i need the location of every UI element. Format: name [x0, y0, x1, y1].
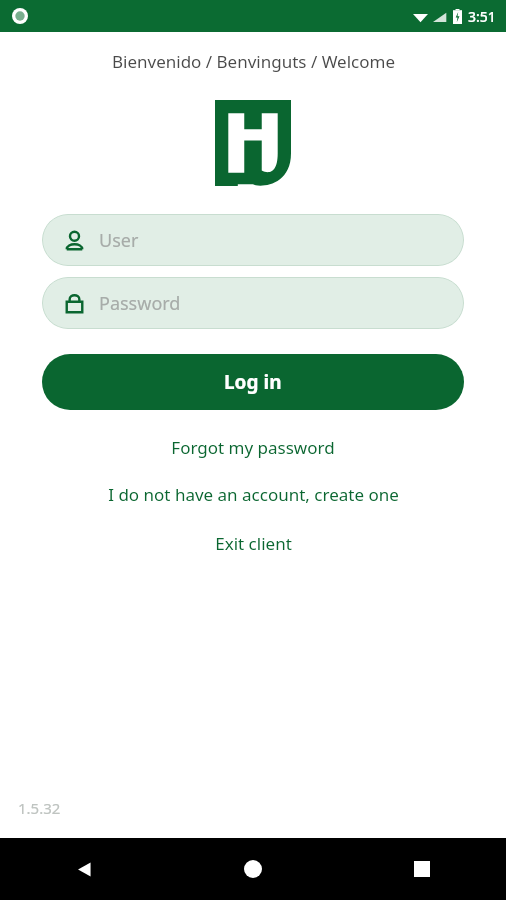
- staticText: Exit client: [215, 532, 292, 555]
- button[interactable]: User: [42, 214, 464, 266]
- staticText: Password: [99, 291, 181, 316]
- button[interactable]: Recent apps: [337, 838, 506, 900]
- button[interactable]: Back: [0, 838, 168, 900]
- button[interactable]: Forgot my password: [0, 430, 506, 465]
- staticText: User: [99, 228, 139, 253]
- button[interactable]: Exit client: [0, 526, 506, 561]
- staticText: Forgot my password: [171, 436, 335, 459]
- staticText: 3:51: [468, 7, 496, 26]
- button[interactable]: Password: [42, 277, 464, 329]
- staticText: 1.5.32: [18, 798, 61, 818]
- staticText: I do not have an account, create one: [108, 483, 399, 506]
- button[interactable]: I do not have an account, create one: [0, 477, 506, 512]
- staticText: Bienvenido / Benvinguts / Welcome: [112, 50, 395, 73]
- button[interactable]: Log in: [42, 354, 464, 410]
- button[interactable]: Home: [168, 838, 337, 900]
- staticText: Log in: [224, 369, 282, 395]
